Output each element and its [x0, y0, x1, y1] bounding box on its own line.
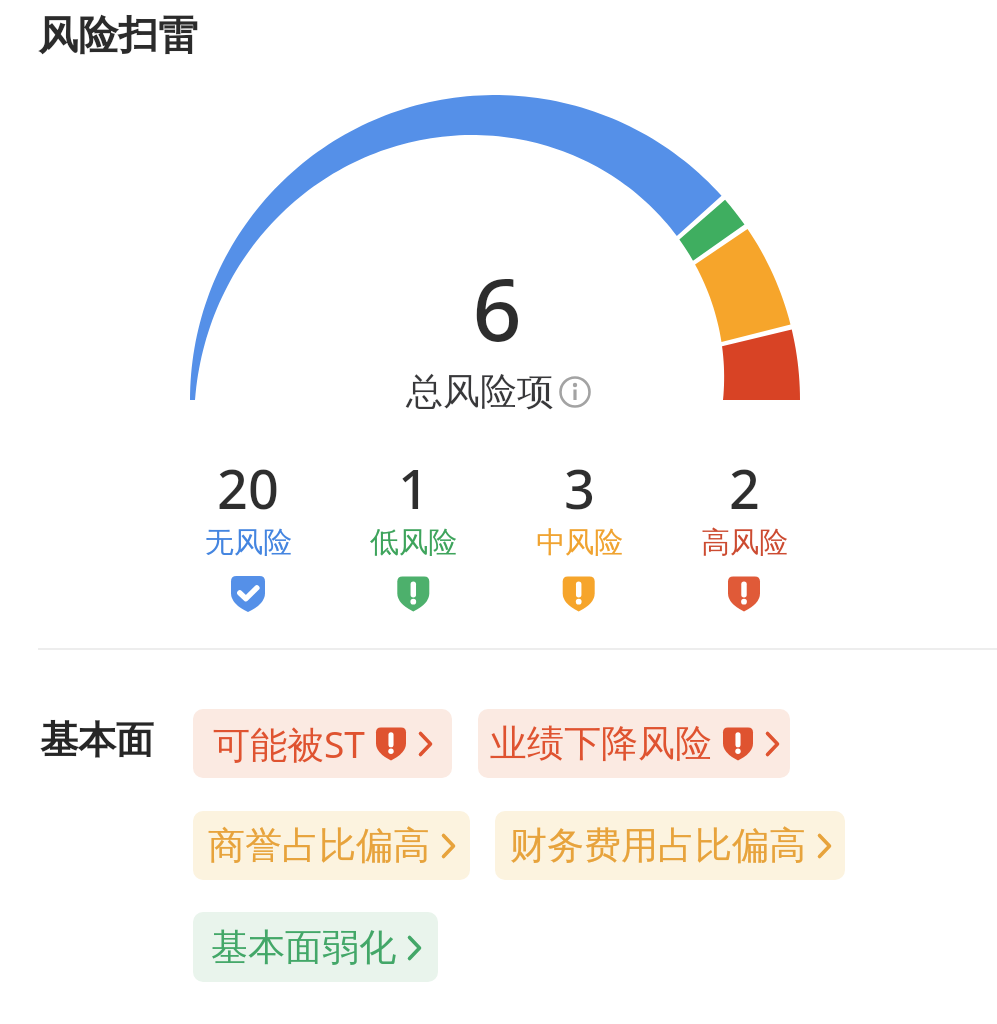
staticText: 业绩下降风险 — [490, 720, 712, 767]
staticText: 无风险 — [205, 524, 292, 561]
staticText: 3 — [564, 451, 595, 525]
staticText: 财务费用占比偏高 — [510, 822, 806, 869]
staticText: 2 — [729, 451, 760, 525]
staticText: 6 — [472, 249, 522, 366]
staticText: 基本面弱化 — [211, 924, 396, 971]
staticText: 中风险 — [536, 524, 623, 561]
staticText: 可能被ST — [213, 718, 365, 769]
staticText: 基本面 — [40, 716, 154, 764]
button[interactable]: 可能被ST — [193, 709, 452, 778]
button[interactable]: 商誉占比偏高 — [193, 811, 470, 880]
staticText: 高风险 — [701, 524, 788, 561]
button[interactable]: 业绩下降风险 — [478, 709, 790, 778]
staticText: 低风险 — [370, 524, 457, 561]
button[interactable]: 财务费用占比偏高 — [495, 811, 845, 880]
staticText: 总风险项 — [406, 368, 554, 415]
staticText: 商誉占比偏高 — [208, 822, 430, 869]
button[interactable]: 基本面弱化 — [193, 912, 438, 982]
staticText: 20 — [217, 451, 279, 525]
button[interactable] — [557, 374, 593, 410]
staticText: 1 — [398, 451, 429, 525]
staticText: 风险扫雷 — [38, 10, 198, 60]
